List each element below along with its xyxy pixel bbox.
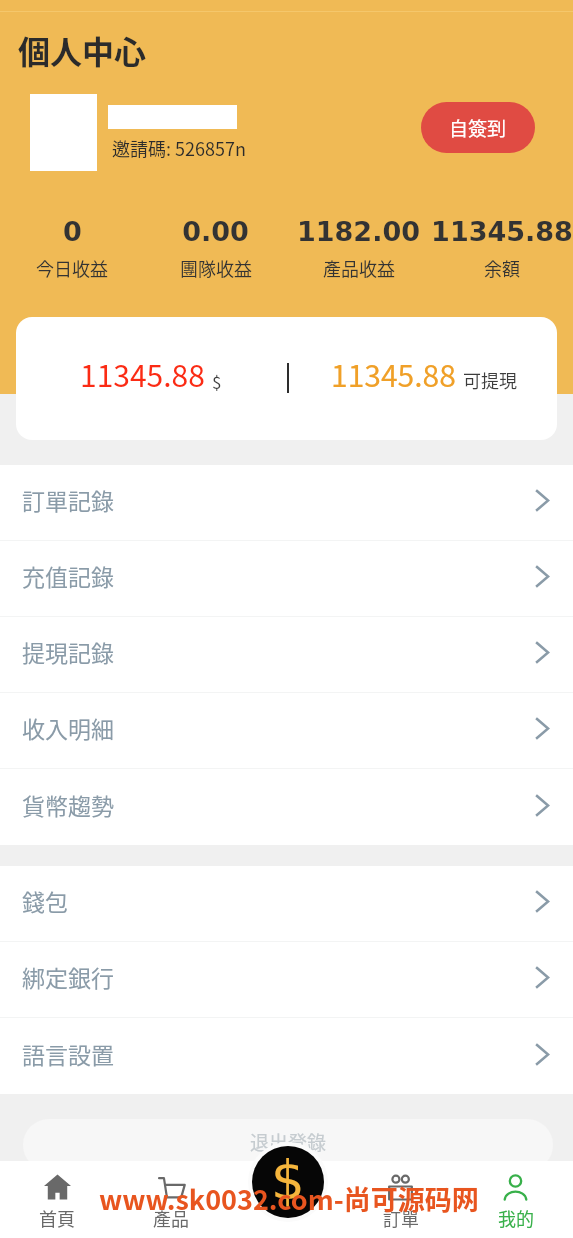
staticText: 今日收益: [36, 255, 108, 281]
button[interactable]: 產品: [114, 1161, 228, 1238]
button[interactable]: Recharge: [252, 1146, 324, 1218]
staticText: 貨幣趨勢: [22, 788, 114, 821]
button[interactable]: 訂單: [343, 1161, 458, 1238]
button[interactable]: 綁定銀行: [0, 942, 573, 1018]
button[interactable]: 首頁: [0, 1161, 114, 1238]
button[interactable]: 語言設置: [0, 1018, 573, 1094]
staticText: 自簽到: [449, 114, 507, 142]
staticText: 可提現: [463, 367, 517, 393]
button[interactable]: 我的: [458, 1161, 573, 1238]
button[interactable]: 自簽到: [421, 102, 535, 153]
staticText: 0.00: [182, 216, 249, 247]
staticText: 產品: [153, 1205, 189, 1231]
staticText: 11345.88: [431, 216, 573, 247]
staticText: 語言設置: [22, 1037, 114, 1070]
staticText: 邀請碼: 526857n: [112, 135, 246, 161]
staticText: www.sk0032.com-尚可源码网: [99, 1179, 479, 1218]
staticText: 團隊收益: [180, 255, 252, 281]
button[interactable]: 貨幣趨勢: [0, 769, 573, 845]
staticText: 訂單記錄: [22, 483, 114, 516]
staticText: 錢包: [22, 884, 68, 917]
button[interactable]: Wallet: [228, 1161, 343, 1238]
staticText: 訂單: [383, 1205, 419, 1231]
staticText: 綁定銀行: [22, 960, 114, 993]
button[interactable]: 退出登錄: [23, 1119, 553, 1171]
button[interactable]: 錢包: [0, 866, 573, 942]
staticText: 余額: [484, 255, 520, 281]
staticText: 提現記錄: [22, 635, 114, 668]
staticText: $: [271, 1150, 305, 1212]
staticText: 個人中心: [18, 27, 147, 73]
button[interactable]: 提現記錄: [0, 617, 573, 693]
staticText: 0: [63, 216, 82, 247]
button[interactable]: 訂單記錄: [0, 465, 573, 541]
staticText: 11345.88: [80, 352, 205, 395]
staticText: 充值記錄: [22, 559, 114, 592]
staticText: $: [212, 369, 222, 394]
staticText: 11345.88: [331, 352, 456, 395]
staticText: 收入明細: [22, 711, 114, 744]
button[interactable]: 收入明細: [0, 693, 573, 769]
staticText: 退出登錄: [250, 1128, 327, 1156]
staticText: 我的: [498, 1205, 534, 1231]
button[interactable]: 充值記錄: [0, 541, 573, 617]
staticText: 1182.00: [297, 216, 420, 247]
staticText: 首頁: [39, 1205, 75, 1231]
staticText: 產品收益: [323, 255, 395, 281]
